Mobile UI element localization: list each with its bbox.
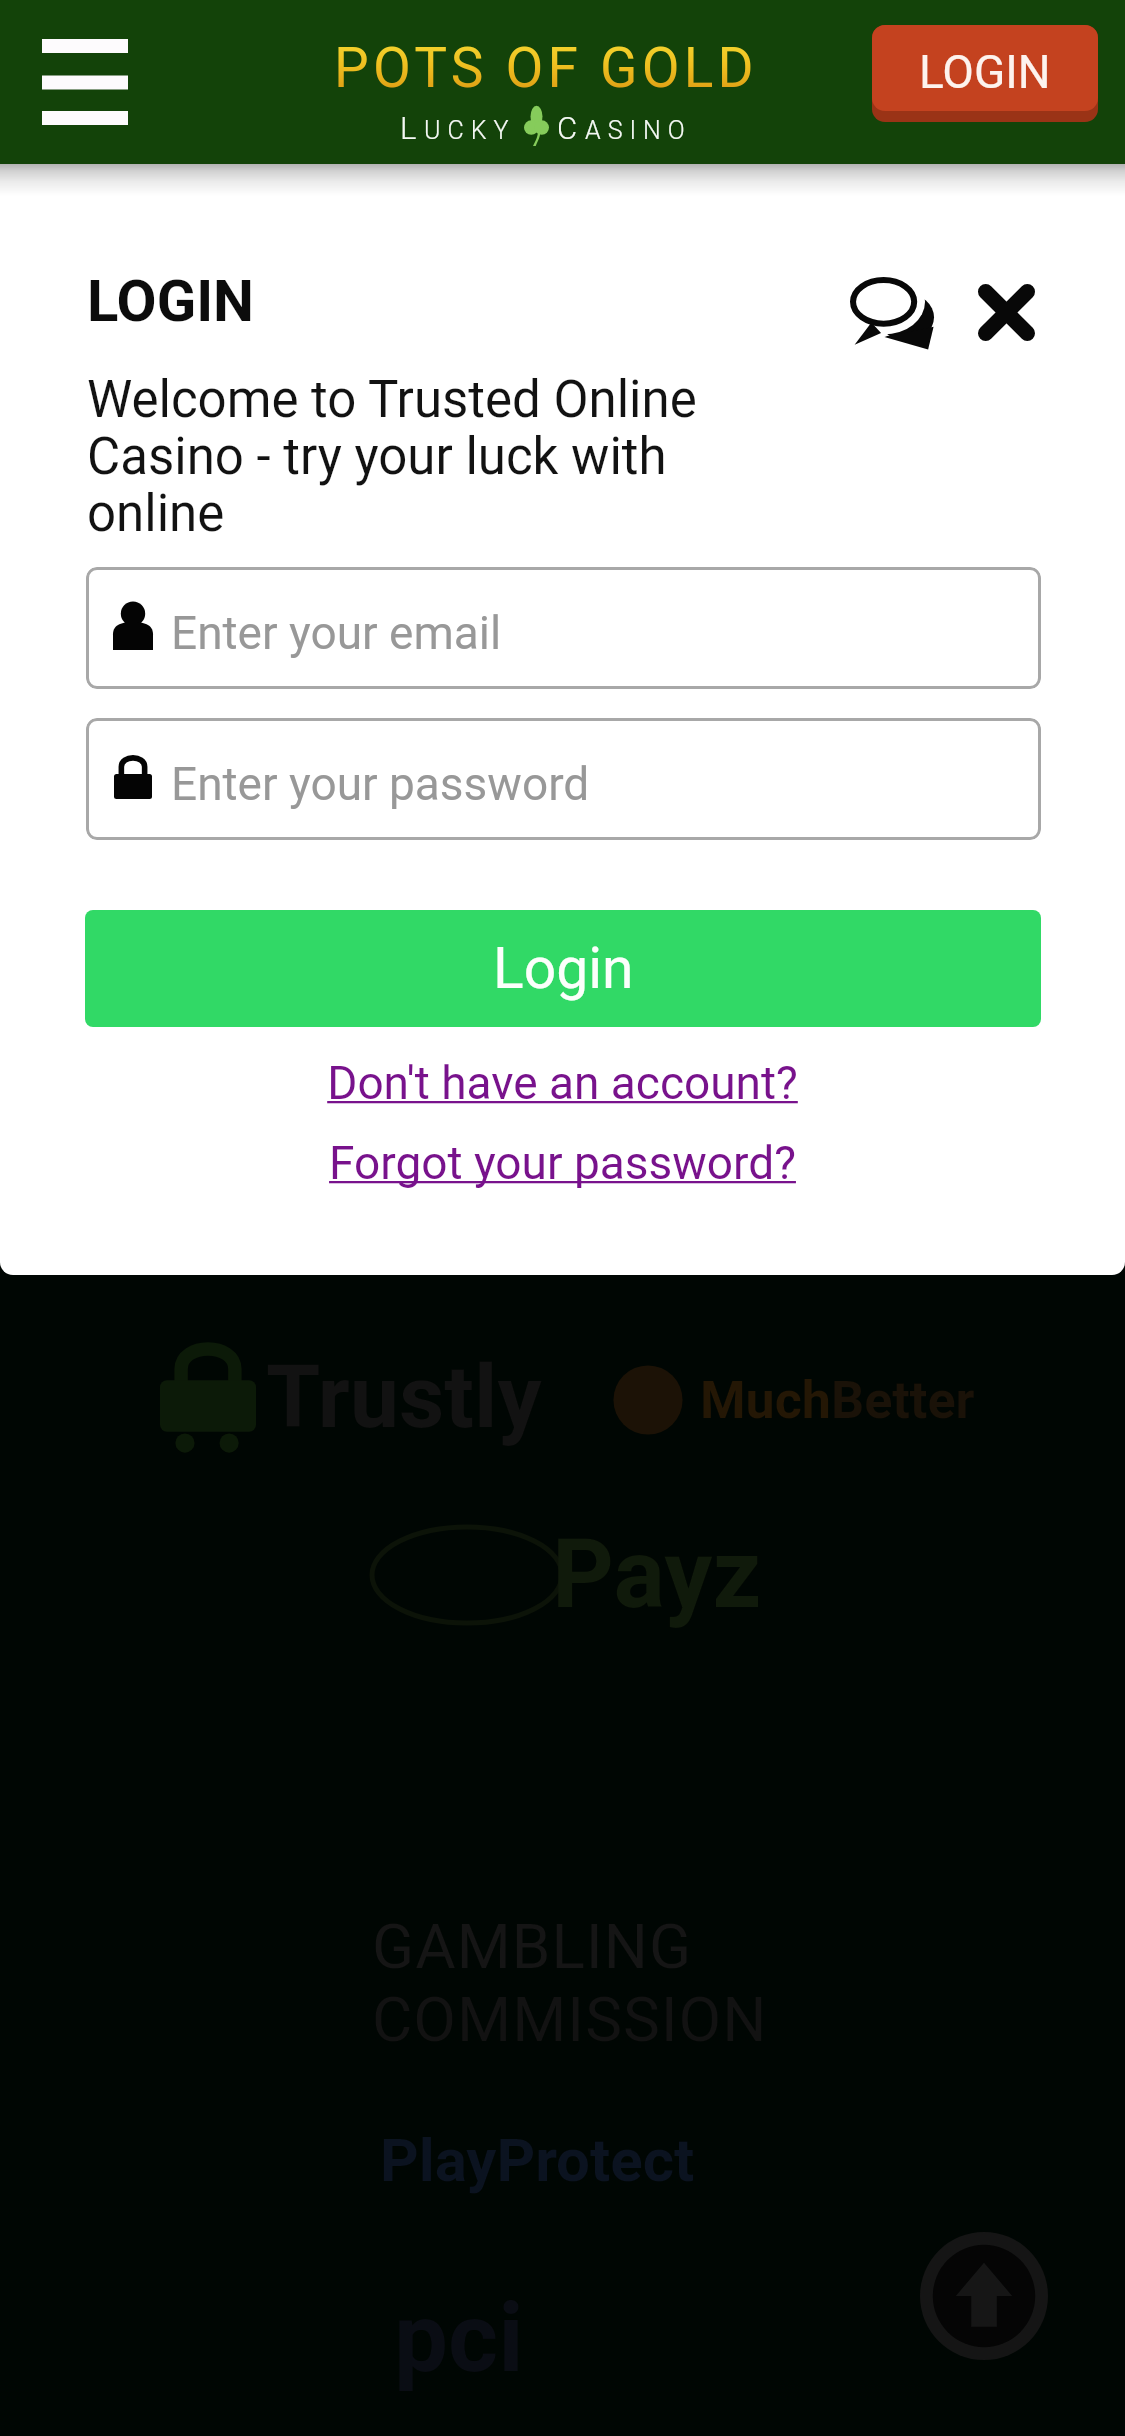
button[interactable]: Back to top xyxy=(920,2232,1048,2360)
staticText: LOGIN xyxy=(87,267,255,335)
staticText: COMMISSION xyxy=(372,1983,768,2056)
staticText: Forgot your password? xyxy=(329,1136,796,1190)
staticText: Welcome to Trusted Online Casino - try y… xyxy=(87,370,789,544)
button[interactable]: Enter your password xyxy=(86,718,1041,840)
staticText: Better xyxy=(831,1370,975,1431)
staticText: UCKY xyxy=(424,116,516,145)
staticText: Enter your password xyxy=(171,757,590,811)
button[interactable]: Enter your email xyxy=(86,567,1041,689)
button[interactable]: Live chat xyxy=(833,257,951,367)
button[interactable]: Forgot your password? xyxy=(0,1127,1125,1199)
button[interactable]: Close xyxy=(951,257,1061,367)
staticText: ASINO xyxy=(585,116,692,145)
staticText: Trustly xyxy=(266,1345,542,1448)
staticText: Login xyxy=(493,935,634,1002)
staticText: Much xyxy=(700,1370,831,1431)
staticText: C xyxy=(557,110,585,146)
staticText: POTS OF GOLD xyxy=(334,36,758,100)
button[interactable]: Login xyxy=(85,910,1041,1027)
staticText: Enter your email xyxy=(171,606,502,660)
staticText: pci xyxy=(394,2282,524,2395)
button[interactable]: Open menu xyxy=(10,14,160,150)
staticText: PlayProtect xyxy=(380,2125,695,2195)
button[interactable]: Don't have an account? xyxy=(0,1047,1125,1119)
staticText: Don't have an account? xyxy=(327,1056,798,1110)
staticText: L xyxy=(400,110,424,146)
staticText: GAMBLING xyxy=(372,1910,693,1983)
staticText: Payz xyxy=(552,1518,762,1631)
button[interactable]: LOGIN xyxy=(872,25,1098,111)
staticText: LOGIN xyxy=(919,45,1051,99)
